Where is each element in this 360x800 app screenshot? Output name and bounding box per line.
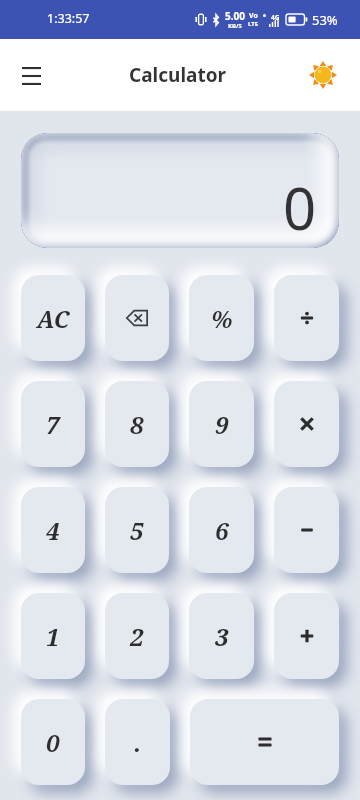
staticText: 0	[46, 726, 60, 759]
staticText: LTE	[248, 20, 259, 28]
button[interactable]: Toggle theme	[305, 57, 341, 93]
staticText: 53%	[312, 11, 338, 29]
staticText: 5	[130, 514, 144, 547]
staticText: 2	[130, 620, 144, 653]
staticText: 6	[215, 514, 229, 547]
staticText: Vo	[249, 11, 258, 21]
staticText: 1:33:57	[47, 10, 90, 27]
staticText: Calculator	[129, 62, 227, 88]
button[interactable]: %	[189, 275, 254, 361]
button[interactable]: Multiply	[274, 381, 339, 467]
button[interactable]: Divide	[274, 275, 339, 361]
staticText: AC	[37, 303, 70, 334]
staticText: 1	[46, 620, 60, 653]
staticText: 7	[46, 408, 60, 441]
button[interactable]: 7	[21, 381, 85, 467]
button[interactable]: 0	[21, 699, 85, 785]
staticText: 3	[215, 620, 229, 653]
button[interactable]: Minus	[274, 487, 339, 573]
staticText: 0	[283, 168, 317, 247]
button[interactable]: 9	[189, 381, 254, 467]
button[interactable]: .	[105, 699, 170, 785]
button[interactable]: Equals	[190, 699, 339, 785]
staticText: 4	[46, 514, 60, 547]
button[interactable]: 2	[105, 593, 169, 679]
button[interactable]: Backspace	[105, 275, 169, 361]
button[interactable]: 5	[105, 487, 169, 573]
button[interactable]: 4	[21, 487, 85, 573]
button[interactable]: Plus	[274, 593, 339, 679]
button[interactable]: Menu	[9, 53, 54, 98]
button[interactable]: 3	[189, 593, 254, 679]
staticText: KB/S	[228, 22, 242, 30]
staticText: %	[211, 302, 233, 335]
staticText: 4G	[271, 13, 280, 22]
button[interactable]: 1	[21, 593, 85, 679]
staticText: .	[134, 726, 142, 759]
staticText: 9	[215, 408, 229, 441]
button[interactable]: 6	[189, 487, 254, 573]
button[interactable]: AC	[21, 275, 85, 361]
staticText: 5.00	[225, 9, 245, 23]
staticText: 8	[130, 408, 144, 441]
button[interactable]: 8	[105, 381, 169, 467]
